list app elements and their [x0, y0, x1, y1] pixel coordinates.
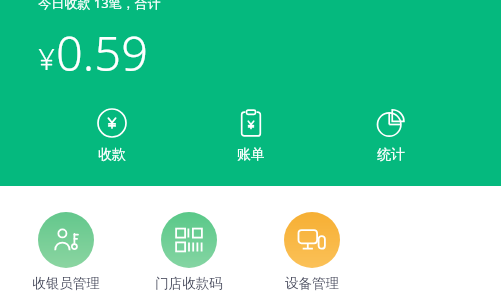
staticText: 0.59	[56, 21, 148, 85]
button[interactable]: 设备管理	[269, 212, 355, 292]
staticText: 收款	[98, 146, 126, 164]
button[interactable]: 账单	[213, 108, 289, 164]
button[interactable]: 门店收款码	[146, 212, 232, 292]
staticText: 收银员管理	[32, 275, 100, 292]
staticText: 统计	[377, 146, 405, 164]
staticText: 门店收款码	[155, 275, 223, 292]
button[interactable]: 收款	[74, 108, 150, 164]
staticText: 账单	[237, 146, 265, 164]
button[interactable]: 统计	[353, 108, 429, 164]
button[interactable]: 收银员管理	[23, 212, 109, 292]
staticText: 设备管理	[285, 275, 339, 292]
staticText: 今日收款 13笔，合计	[38, 0, 161, 12]
staticText: ¥	[38, 39, 55, 78]
